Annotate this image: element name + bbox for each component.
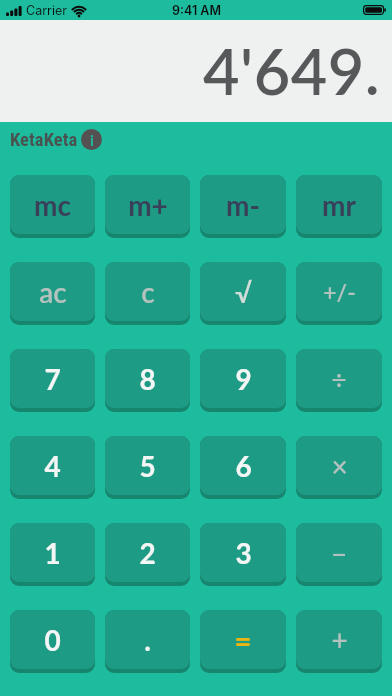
staticText: ac [39,275,67,309]
button[interactable]: c [105,262,190,325]
staticText: . [144,623,151,657]
staticText: m- [226,188,260,222]
button[interactable]: 1 [10,523,95,586]
staticText: 5 [139,449,156,483]
button[interactable]: − [296,523,382,586]
staticText: 6 [235,449,252,483]
staticText: c [141,275,155,309]
button[interactable]: m+ [105,175,190,238]
staticText: = [234,622,252,658]
staticText: +/- [323,278,356,306]
staticText: 0 [44,623,61,657]
button[interactable]: m- [200,175,286,238]
button[interactable]: 6 [200,436,286,499]
button[interactable]: = [200,610,286,673]
staticText: 1 [44,536,61,570]
button[interactable]: +/- [296,262,382,325]
staticText: × [331,449,348,483]
staticText: √ [235,276,252,308]
button[interactable]: 9 [200,349,286,412]
staticText: mr [322,188,356,222]
button[interactable]: . [105,610,190,673]
button[interactable]: √ [200,262,286,325]
button[interactable]: 5 [105,436,190,499]
button[interactable]: ac [10,262,95,325]
button[interactable]: + [296,610,382,673]
staticText: 4'649. [203,33,381,109]
button[interactable]: × [296,436,382,499]
button[interactable]: 8 [105,349,190,412]
staticText: 4 [44,449,61,483]
staticText: 2 [139,536,156,570]
staticText: i [90,131,94,149]
staticText: Carrier [26,3,67,18]
button[interactable]: 7 [10,349,95,412]
staticText: − [331,537,347,569]
staticText: 8 [139,362,156,396]
staticText: + [331,623,348,657]
staticText: m+ [128,188,168,222]
button[interactable]: mc [10,175,95,238]
button[interactable]: i [81,129,102,150]
button[interactable]: ÷ [296,349,382,412]
staticText: ÷ [331,363,347,394]
staticText: 7 [44,362,61,396]
button[interactable]: 0 [10,610,95,673]
button[interactable]: 2 [105,523,190,586]
staticText: 9 [235,362,252,396]
staticText: KetaKeta [10,129,78,150]
staticText: mc [34,188,71,222]
button[interactable]: 4 [10,436,95,499]
button[interactable]: 3 [200,523,286,586]
staticText: 3 [235,536,252,570]
button[interactable]: mr [296,175,382,238]
staticText: 9:41 AM [172,3,221,18]
